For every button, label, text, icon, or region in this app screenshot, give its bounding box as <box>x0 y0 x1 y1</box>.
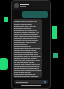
button[interactable] <box>22 11 48 18</box>
button[interactable]: Lorem ipsum dolor sit amet consectetur a… <box>14 20 41 77</box>
button[interactable] <box>12 1 50 10</box>
staticText: Lorem ipsum dolor sit amet consectetur a… <box>14 20 41 77</box>
button[interactable] <box>14 80 48 84</box>
